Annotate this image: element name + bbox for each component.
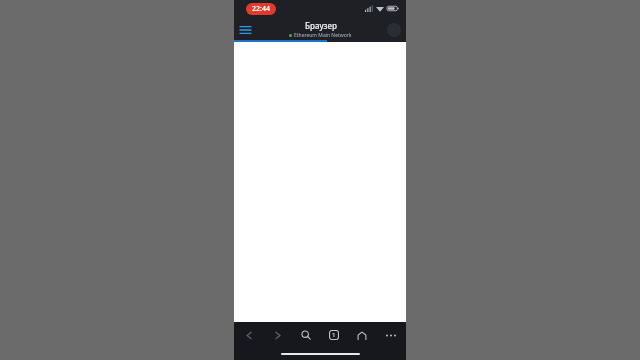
button[interactable]: Back <box>236 322 262 348</box>
staticText: Ethereum Main Network <box>294 32 352 39</box>
button[interactable]: Tabs <box>321 322 347 348</box>
staticText: 1 <box>332 331 336 339</box>
button[interactable]: More options <box>378 322 404 348</box>
button[interactable]: Search <box>293 322 319 348</box>
button[interactable]: Account <box>387 23 401 37</box>
button[interactable]: Forward <box>265 322 291 348</box>
button[interactable]: Menu <box>234 19 256 41</box>
staticText: Браузер <box>305 20 337 31</box>
button[interactable]: Home <box>349 322 375 348</box>
staticText: 22:44 <box>252 4 270 14</box>
